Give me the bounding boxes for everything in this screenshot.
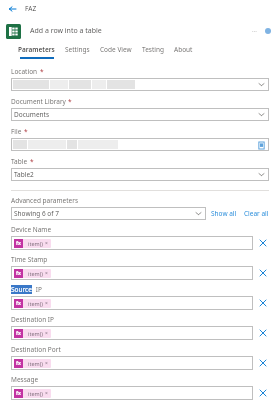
staticText: IP <box>34 285 42 294</box>
button[interactable]: fx <box>11 386 253 400</box>
button[interactable]: Remove parameter <box>257 327 269 339</box>
staticText: Table2 <box>14 170 34 179</box>
staticText: * <box>40 67 44 76</box>
button[interactable]: fx <box>11 326 253 340</box>
button[interactable]: Code View <box>95 45 137 59</box>
button[interactable]: Show all <box>211 209 237 218</box>
staticText: Add a row into a table <box>30 26 102 36</box>
button[interactable]: fx <box>14 239 51 248</box>
button[interactable]: fx <box>11 266 253 280</box>
button[interactable]: Remove parameter <box>257 267 269 279</box>
staticText: Parameters <box>18 45 55 54</box>
staticText: item() <box>28 240 43 247</box>
button[interactable]: Remove parameter <box>257 297 269 309</box>
button[interactable]: fx <box>14 389 51 398</box>
button[interactable]: Add a row into a table <box>6 17 274 45</box>
staticText: Showing 6 of 7 <box>14 209 194 218</box>
staticText: Destination Port <box>11 345 61 354</box>
staticText: Location <box>11 67 38 76</box>
button[interactable]: Browse file <box>256 140 266 150</box>
button[interactable]: About <box>169 45 198 59</box>
button[interactable]: Back <box>6 3 18 15</box>
staticText: × <box>45 270 48 277</box>
staticText: * <box>30 157 34 166</box>
staticText: item() <box>28 270 43 277</box>
staticText: * <box>24 127 28 136</box>
staticText: item() <box>28 300 43 307</box>
button[interactable]: fx <box>11 296 253 310</box>
staticText: Table <box>11 157 28 166</box>
staticText: × <box>45 390 48 397</box>
button[interactable] <box>11 78 269 91</box>
button[interactable]: fx <box>14 329 51 338</box>
button[interactable]: Settings <box>60 45 95 59</box>
staticText: ··· <box>252 27 257 35</box>
staticText: Code View <box>100 45 132 54</box>
staticText: Device Name <box>11 225 52 234</box>
button[interactable]: Table2 <box>11 168 269 181</box>
staticText: fx <box>16 270 21 277</box>
staticText: fx <box>16 330 21 337</box>
button[interactable]: fx <box>11 236 253 250</box>
button[interactable]: fx <box>11 356 253 370</box>
staticText: About <box>174 45 193 54</box>
staticText: × <box>45 300 48 307</box>
staticText: item() <box>28 330 43 337</box>
button[interactable]: Showing 6 of 7 <box>11 207 206 220</box>
staticText: × <box>45 240 48 247</box>
staticText: Advanced parameters <box>11 196 78 205</box>
staticText: item() <box>28 360 43 367</box>
staticText: Document Library <box>11 97 66 106</box>
staticText: Source <box>11 285 32 294</box>
button[interactable]: Clear all <box>244 209 269 218</box>
staticText: item() <box>28 390 43 397</box>
staticText: Documents <box>14 110 50 119</box>
button[interactable]: Browse file <box>11 138 269 151</box>
button[interactable]: fx <box>14 359 51 368</box>
staticText: fx <box>16 390 21 397</box>
button[interactable]: fx <box>14 299 51 308</box>
staticText: Settings <box>65 45 90 54</box>
staticText: * <box>68 97 72 106</box>
staticText: fx <box>16 240 21 247</box>
staticText: Testing <box>142 45 164 54</box>
button[interactable]: Info <box>262 25 274 37</box>
button[interactable]: fx <box>14 269 51 278</box>
staticText: × <box>45 330 48 337</box>
button[interactable]: Parameters <box>13 45 60 59</box>
staticText: fx <box>16 360 21 367</box>
button[interactable]: Remove parameter <box>257 387 269 399</box>
staticText: fx <box>16 300 21 307</box>
staticText: Destination IP <box>11 315 55 324</box>
button[interactable]: Remove parameter <box>257 237 269 249</box>
staticText: FAZ <box>25 4 37 13</box>
button[interactable]: Testing <box>137 45 169 59</box>
staticText: File <box>11 127 22 136</box>
staticText: × <box>45 360 48 367</box>
button[interactable]: Documents <box>11 108 269 121</box>
staticText: Message <box>11 375 39 384</box>
button[interactable]: More options <box>248 25 260 37</box>
button[interactable]: Remove parameter <box>257 357 269 369</box>
staticText: Time Stamp <box>11 255 48 264</box>
